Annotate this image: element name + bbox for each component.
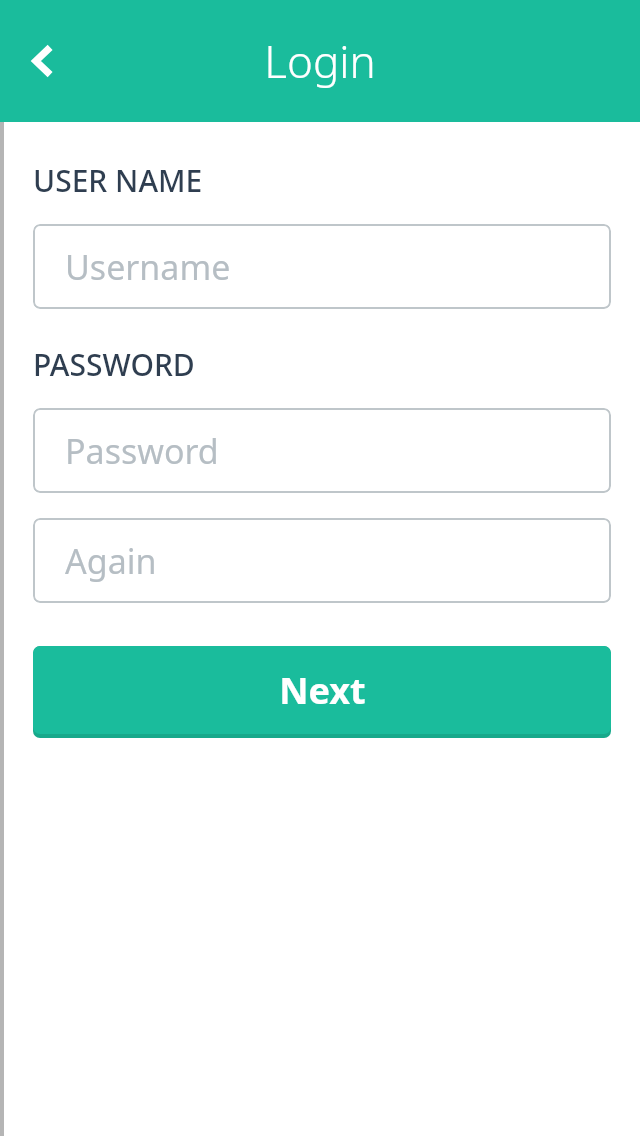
staticText: USER NAME [33, 160, 203, 201]
staticText: Next [279, 666, 366, 715]
staticText: Password [65, 428, 219, 474]
button[interactable]: Back [8, 25, 80, 97]
staticText: PASSWORD [33, 344, 195, 385]
staticText: Again [65, 538, 157, 584]
button[interactable]: Next [33, 646, 611, 738]
staticText: Username [65, 244, 231, 290]
staticText: Login [264, 31, 376, 91]
button[interactable]: Username [33, 224, 611, 309]
button[interactable]: Again [33, 518, 611, 603]
button[interactable]: Password [33, 408, 611, 493]
